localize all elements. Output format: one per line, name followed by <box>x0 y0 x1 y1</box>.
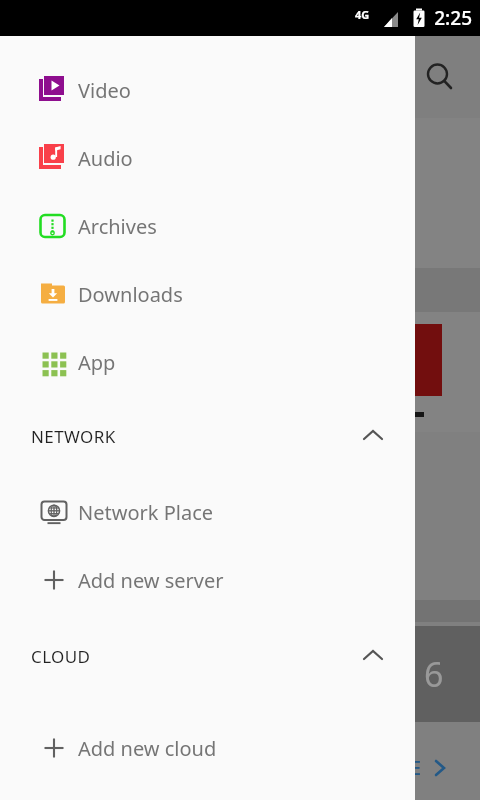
staticText: NETWORK <box>31 425 116 448</box>
staticText: Video <box>78 77 131 104</box>
staticText: Archives <box>78 213 157 240</box>
other: Collapse NETWORK <box>357 420 389 452</box>
button[interactable]: E <box>410 754 450 781</box>
button[interactable]: CLOUD <box>0 630 415 682</box>
staticText: 6 <box>424 651 444 697</box>
button[interactable]: App <box>0 328 415 396</box>
staticText: Add new server <box>78 567 224 594</box>
button[interactable]: Video <box>0 56 415 124</box>
button[interactable]: Archives <box>0 192 415 260</box>
staticText: Downloads <box>78 281 183 308</box>
button[interactable]: Network Place <box>0 478 415 546</box>
other: Collapse CLOUD <box>357 640 389 672</box>
button[interactable]: NETWORK <box>0 410 415 462</box>
button[interactable]: Add new cloud <box>0 714 415 782</box>
button[interactable]: Search <box>418 55 462 99</box>
staticText: 4G <box>355 7 370 22</box>
button[interactable]: Add new server <box>0 546 415 614</box>
staticText: Network Place <box>78 499 214 526</box>
staticText: CLOUD <box>31 645 91 668</box>
staticText: Add new cloud <box>78 735 217 762</box>
button[interactable]: Audio <box>0 124 415 192</box>
button[interactable]: Downloads <box>0 260 415 328</box>
staticText: Audio <box>78 145 133 172</box>
staticText: E <box>410 754 422 781</box>
staticText: 2:25 <box>434 5 472 31</box>
staticText: App <box>78 349 116 376</box>
